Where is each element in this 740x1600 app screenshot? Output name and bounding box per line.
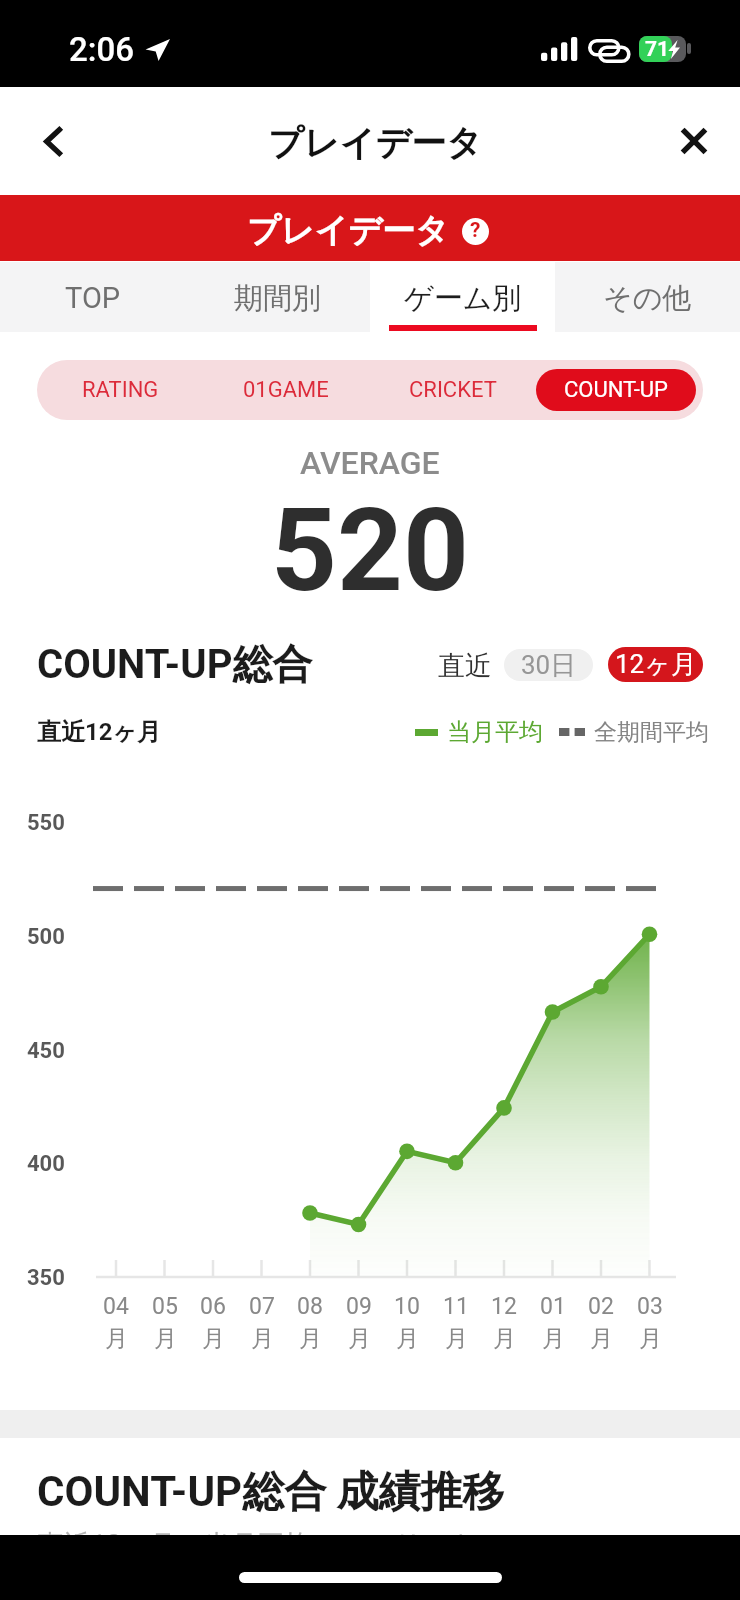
staticText: 月 — [590, 1324, 613, 1353]
staticText: 09 — [346, 1293, 372, 1320]
staticText: 直近12ヶ月の当月平均スコアリスト — [37, 1528, 478, 1562]
staticText: 当月平均 — [447, 717, 543, 747]
staticText: 全期間平均 — [594, 718, 709, 747]
staticText: 直近12ヶ月 — [37, 717, 162, 747]
button[interactable]: 12ヶ月 — [608, 647, 703, 682]
staticText: COUNT-UP — [564, 377, 668, 403]
button[interactable]: COUNT-UP — [536, 369, 696, 411]
button[interactable]: Help — [462, 218, 489, 245]
staticText: RATING — [82, 377, 159, 403]
staticText: 05 — [152, 1293, 178, 1320]
staticText: プレイデータ — [268, 121, 483, 165]
staticText: その他 — [603, 280, 692, 317]
staticText: 10 — [394, 1293, 420, 1320]
staticText: 01 — [540, 1293, 566, 1320]
staticText: 03 — [637, 1293, 663, 1320]
staticText: 月 — [445, 1324, 468, 1353]
staticText: TOP — [65, 281, 121, 315]
staticText: 月 — [348, 1324, 371, 1353]
staticText: 500 — [27, 924, 65, 950]
staticText: 08 — [297, 1293, 323, 1320]
button[interactable]: 期間別 — [185, 262, 370, 332]
button[interactable]: その他 — [555, 262, 740, 332]
button[interactable]: 01GAME — [203, 360, 369, 420]
staticText: 71 — [645, 37, 670, 62]
staticText: 06 — [200, 1293, 226, 1320]
staticText: 直近 — [438, 649, 492, 683]
button[interactable]: ゲーム別 — [370, 262, 555, 332]
button[interactable]: 30日 — [504, 649, 593, 681]
staticText: 01GAME — [243, 377, 329, 403]
staticText: COUNT-UP総合 — [37, 639, 313, 689]
button[interactable]: TOP — [0, 262, 185, 332]
button[interactable]: Close — [656, 103, 732, 179]
staticText: 400 — [27, 1151, 65, 1177]
staticText: 550 — [27, 810, 65, 836]
staticText: 12ヶ月 — [615, 648, 697, 681]
staticText: 07 — [249, 1293, 275, 1320]
staticText: プレイデータ — [247, 210, 449, 252]
staticText: CRICKET — [409, 377, 497, 403]
staticText: 月 — [542, 1324, 565, 1353]
staticText: 2:06 — [69, 30, 134, 69]
button[interactable]: Back — [14, 103, 90, 179]
staticText: COUNT-UP総合 成績推移 — [37, 1466, 505, 1519]
staticText: 月 — [493, 1324, 516, 1353]
staticText: 02 — [588, 1293, 614, 1320]
staticText: 520 — [271, 483, 469, 610]
staticText: 月 — [251, 1324, 274, 1353]
staticText: 月 — [105, 1324, 128, 1353]
button[interactable]: CRICKET — [369, 360, 536, 420]
staticText: ゲーム別 — [404, 280, 522, 317]
staticText: 期間別 — [234, 280, 321, 317]
staticText: 月 — [639, 1324, 662, 1353]
staticText: 04 — [103, 1293, 129, 1320]
staticText: 月 — [154, 1324, 177, 1353]
staticText: 月 — [299, 1324, 322, 1353]
staticText: 月 — [396, 1324, 419, 1353]
staticText: 12 — [491, 1293, 517, 1320]
staticText: 450 — [27, 1038, 65, 1064]
button[interactable]: RATING — [37, 360, 203, 420]
staticText: ? — [470, 218, 481, 243]
staticText: 30日 — [521, 649, 577, 681]
staticText: AVERAGE — [300, 444, 440, 482]
staticText: 350 — [27, 1265, 65, 1291]
staticText: 11 — [443, 1293, 469, 1320]
staticText: 月 — [202, 1324, 225, 1353]
